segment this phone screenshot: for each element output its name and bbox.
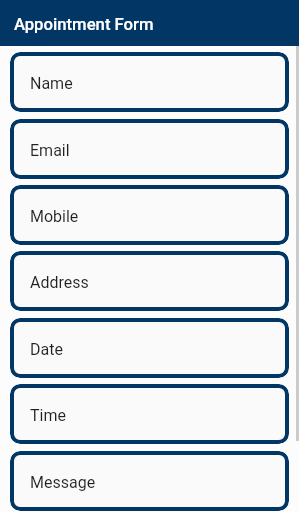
staticText: Time xyxy=(30,406,66,425)
staticText: Name xyxy=(30,74,73,93)
staticText: Appointment Form xyxy=(14,15,154,35)
button[interactable]: Date xyxy=(10,318,289,378)
button[interactable]: Address xyxy=(10,251,289,311)
staticText: Address xyxy=(30,273,89,292)
staticText: Message xyxy=(30,473,96,492)
button[interactable]: Name xyxy=(10,52,289,112)
staticText: Mobile xyxy=(30,207,79,226)
staticText: Email xyxy=(30,141,70,160)
button[interactable]: Email xyxy=(10,119,289,179)
staticText: Date xyxy=(30,340,63,359)
button[interactable]: Message xyxy=(10,451,289,511)
button[interactable]: Time xyxy=(10,384,289,444)
button[interactable]: Mobile xyxy=(10,185,289,245)
